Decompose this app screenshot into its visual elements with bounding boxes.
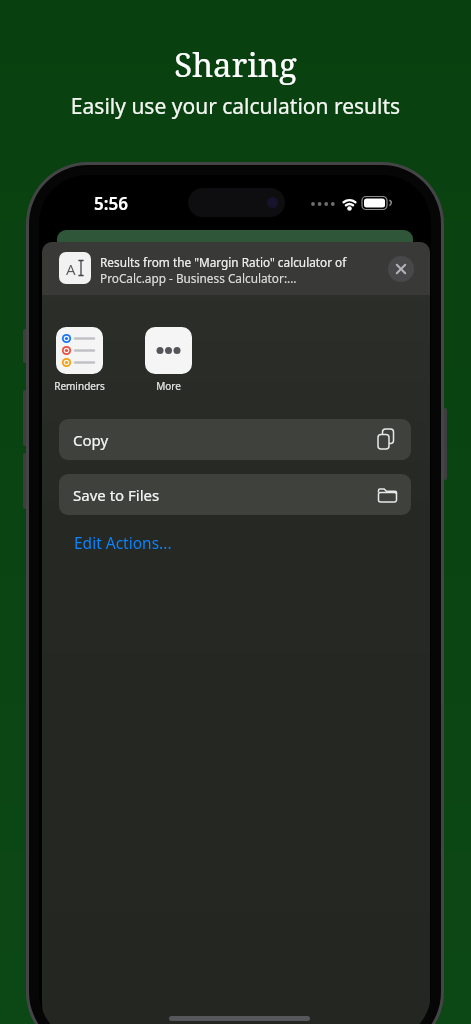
staticText: More <box>131 379 206 393</box>
staticText: Reminders <box>42 379 117 393</box>
staticText: Easily use your calculation results <box>0 92 471 121</box>
staticText: A <box>66 259 76 279</box>
staticText: Save to Files <box>73 485 160 505</box>
button[interactable] <box>388 256 414 282</box>
button[interactable]: Edit Actions... <box>74 532 172 553</box>
staticText: Results from the "Margin Ratio" calculat… <box>100 254 347 270</box>
button[interactable] <box>56 327 103 374</box>
staticText: 5:56 <box>94 192 128 215</box>
button[interactable] <box>145 327 192 374</box>
button[interactable]: Copy <box>59 419 411 460</box>
staticText: Sharing <box>0 42 471 87</box>
staticText: Copy <box>73 430 109 450</box>
button[interactable]: Save to Files <box>59 474 411 515</box>
staticText: ProCalc.app - Business Calculator:... <box>100 270 297 286</box>
